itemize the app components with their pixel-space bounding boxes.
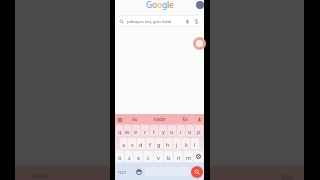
button[interactable]: l <box>191 138 199 149</box>
button[interactable]: r <box>141 125 149 136</box>
button[interactable]: Ka <box>172 114 197 124</box>
staticText: r <box>144 128 147 136</box>
staticText: h <box>166 141 170 149</box>
staticText: l <box>167 0 169 10</box>
staticText: t <box>153 128 156 136</box>
button[interactable]: ?123 <box>116 166 127 178</box>
staticText: n <box>177 154 181 162</box>
button[interactable]: p <box>195 125 203 136</box>
staticText: o <box>188 128 192 136</box>
button[interactable]: d <box>137 138 145 149</box>
button[interactable]: w <box>124 125 131 136</box>
staticText: a <box>122 141 126 149</box>
staticText: g <box>157 141 161 149</box>
staticText: l <box>194 141 196 149</box>
staticText: m <box>186 154 192 162</box>
button[interactable]: e <box>132 125 140 136</box>
staticText: g <box>162 0 167 10</box>
staticText: o <box>152 0 157 10</box>
button[interactable]: Backspace <box>194 151 203 162</box>
button[interactable]: Emoji <box>134 167 144 177</box>
button[interactable]: s <box>128 138 136 149</box>
button[interactable]: y <box>159 125 167 136</box>
button[interactable]: ı <box>177 125 185 136</box>
button[interactable]: c <box>144 151 153 162</box>
button[interactable]: j <box>173 138 181 149</box>
staticText: k <box>185 141 188 149</box>
staticText: x <box>137 154 140 162</box>
button[interactable]: k <box>182 138 190 149</box>
staticText: c <box>147 154 150 162</box>
staticText: pitbayro kaç gün kaldı <box>127 18 185 24</box>
button[interactable]: n <box>174 151 183 162</box>
staticText: ?123 <box>118 170 126 175</box>
button[interactable]: b <box>164 151 173 162</box>
staticText: j <box>176 141 178 149</box>
button[interactable]: kadar <box>147 114 172 124</box>
staticText: ö <box>118 154 122 162</box>
button[interactable]: v <box>154 151 163 162</box>
button[interactable]: t <box>150 125 158 136</box>
staticText: ku <box>132 116 138 122</box>
staticText: o <box>157 0 162 10</box>
button[interactable]: z <box>125 151 133 162</box>
button[interactable]: u <box>168 125 176 136</box>
button[interactable]: pitbayro kaç gün kaldı <box>116 15 203 27</box>
button[interactable]: o <box>186 125 194 136</box>
button[interactable]: Search <box>191 166 203 178</box>
button[interactable]: x <box>134 151 143 162</box>
button[interactable]: m <box>184 151 193 162</box>
button[interactable]: Toolbar <box>117 117 122 122</box>
staticText: v <box>157 154 160 162</box>
button[interactable]: h <box>164 138 172 149</box>
button[interactable]: f <box>146 138 154 149</box>
staticText: Ka <box>182 116 188 122</box>
staticText: p <box>197 128 201 136</box>
staticText: u <box>170 128 174 136</box>
staticText: y <box>162 128 165 136</box>
staticText: e <box>134 128 138 136</box>
button[interactable]: q <box>116 125 123 136</box>
staticText: G <box>146 0 152 10</box>
staticText: q <box>118 128 122 136</box>
staticText: ı <box>180 128 182 136</box>
staticText: f <box>149 141 151 149</box>
staticText: z <box>128 154 131 162</box>
staticText: w <box>125 128 130 136</box>
button[interactable]: Account <box>196 1 204 9</box>
staticText: kadar <box>154 116 166 122</box>
button[interactable]: ö <box>116 151 124 162</box>
button[interactable]: a <box>120 138 127 149</box>
staticText: b <box>167 154 171 162</box>
button[interactable]: g <box>155 138 163 149</box>
button[interactable]: ku <box>122 114 147 124</box>
staticText: s <box>131 141 134 149</box>
staticText: d <box>139 141 143 149</box>
button[interactable]: Assistant <box>193 37 206 50</box>
staticText: e <box>169 0 174 10</box>
